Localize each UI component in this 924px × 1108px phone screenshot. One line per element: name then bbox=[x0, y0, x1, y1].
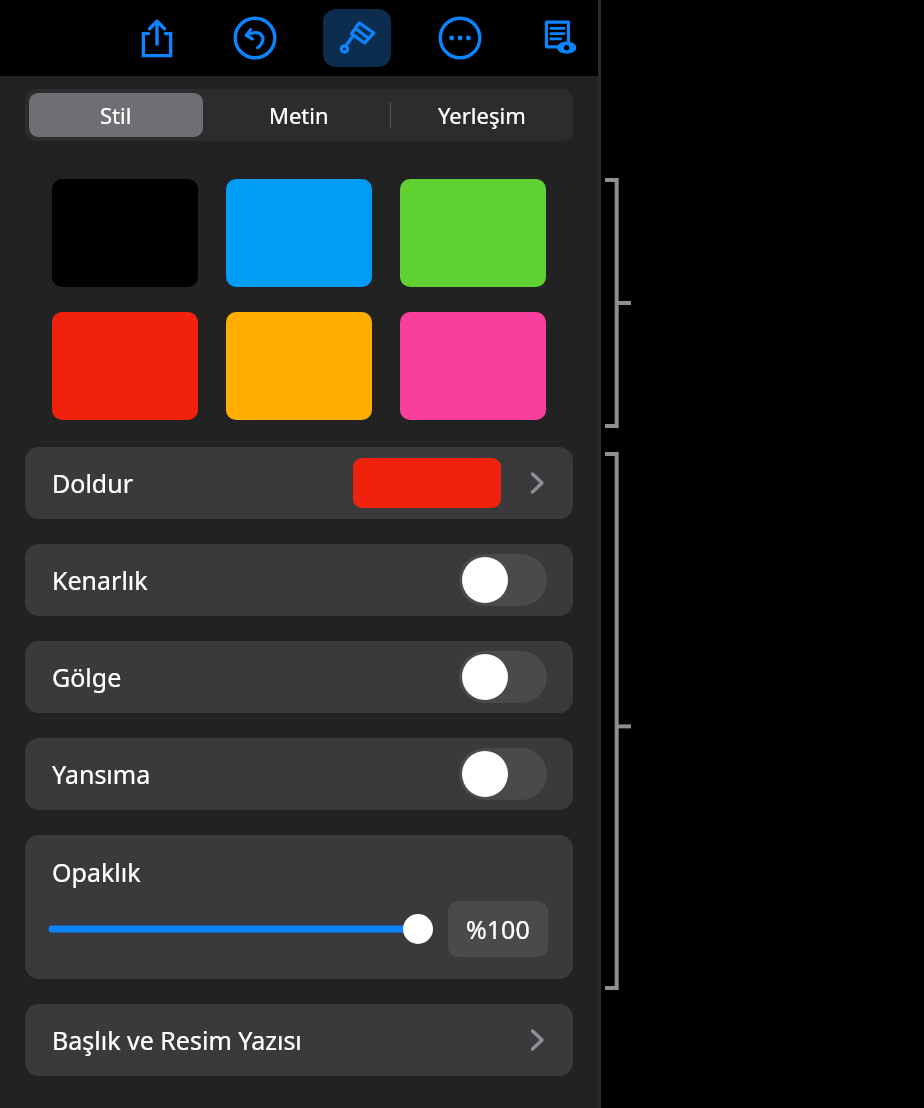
button[interactable]: Doldur bbox=[25, 447, 573, 519]
button[interactable]: Kenarlık toggle bbox=[459, 554, 547, 606]
staticText: Yansıma bbox=[52, 757, 151, 791]
staticText: Opaklık bbox=[52, 855, 141, 889]
staticText: Stil bbox=[100, 100, 132, 130]
button[interactable]: Style swatch bbox=[226, 312, 372, 420]
button[interactable]: More bbox=[431, 9, 489, 67]
button[interactable]: Yerleşim bbox=[390, 89, 573, 141]
staticText: Kenarlık bbox=[52, 563, 148, 597]
staticText: Yerleşim bbox=[438, 100, 526, 130]
staticText: Başlık ve Resim Yazısı bbox=[52, 1023, 302, 1057]
staticText: %100 bbox=[466, 912, 530, 946]
button[interactable]: Opacity slider bbox=[52, 912, 432, 946]
button[interactable]: Stil bbox=[29, 93, 203, 137]
button[interactable]: Style swatch bbox=[400, 179, 546, 287]
button[interactable]: Share bbox=[128, 9, 186, 67]
button[interactable]: %100 bbox=[448, 901, 548, 957]
button[interactable]: Document bbox=[528, 9, 586, 67]
button[interactable]: Yansıma bbox=[25, 738, 573, 810]
button[interactable]: Başlık ve Resim Yazısı bbox=[25, 1004, 573, 1076]
button[interactable]: Metin bbox=[207, 89, 390, 141]
button[interactable]: Undo bbox=[226, 9, 284, 67]
button[interactable]: Yansıma toggle bbox=[459, 748, 547, 800]
button[interactable]: Format bbox=[323, 9, 391, 67]
button[interactable]: Gölge toggle bbox=[459, 651, 547, 703]
button[interactable]: Style swatch bbox=[226, 179, 372, 287]
button[interactable]: Style swatch bbox=[400, 312, 546, 420]
button[interactable]: Gölge bbox=[25, 641, 573, 713]
staticText: Metin bbox=[269, 100, 329, 130]
button[interactable]: Kenarlık bbox=[25, 544, 573, 616]
staticText: Gölge bbox=[52, 660, 122, 694]
staticText: Doldur bbox=[52, 466, 133, 500]
button[interactable]: Style swatch bbox=[52, 312, 198, 420]
